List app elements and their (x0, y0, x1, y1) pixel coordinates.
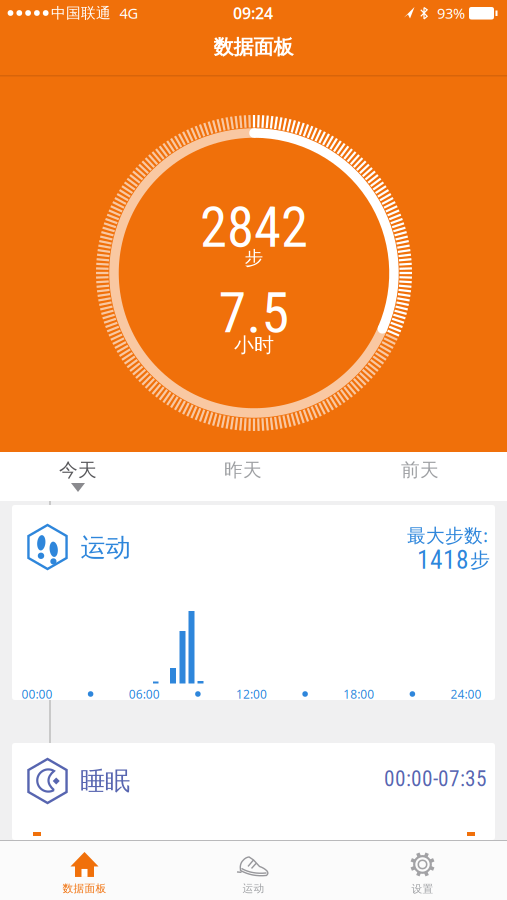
staticText: 小时 (234, 333, 274, 357)
button[interactable]: 运动 (12, 505, 495, 700)
staticText: 前天 (401, 458, 439, 481)
staticText: 00:00-07:35 (384, 766, 487, 791)
staticText: 设置 (411, 882, 433, 895)
staticText: 步 (244, 246, 263, 269)
staticText: 18:00 (343, 686, 374, 702)
button[interactable]: 数据面板 (0, 841, 169, 899)
staticText: 4G (119, 3, 138, 23)
button[interactable]: 昨天 (163, 448, 323, 492)
staticText: 93% (437, 3, 465, 23)
staticText: 1418 (417, 545, 469, 575)
staticText: 00:00 (21, 686, 52, 702)
button[interactable]: 睡眠 (12, 743, 495, 840)
staticText: 24:00 (450, 686, 481, 702)
staticText: 昨天 (224, 458, 262, 481)
staticText: 步 (470, 548, 490, 572)
staticText: 09:24 (233, 2, 273, 24)
staticText: 数据面板 (213, 35, 293, 59)
staticText: 06:00 (129, 686, 160, 702)
staticText: 数据面板 (62, 882, 106, 895)
staticText: 12:00 (236, 686, 267, 702)
staticText: 运动 (242, 882, 264, 895)
staticText: 运动 (80, 532, 130, 563)
button[interactable]: 设置 (338, 841, 507, 899)
staticText: 中国联通 (51, 4, 111, 22)
button[interactable]: 今天 (0, 448, 158, 492)
staticText: 最大步数: (407, 523, 488, 547)
button[interactable]: 运动 (169, 841, 338, 899)
button[interactable]: 前天 (340, 448, 500, 492)
staticText: 今天 (59, 458, 97, 481)
staticText: 睡眠 (80, 765, 130, 796)
staticText: 2842 (200, 196, 308, 260)
staticText: 7.5 (218, 280, 289, 346)
